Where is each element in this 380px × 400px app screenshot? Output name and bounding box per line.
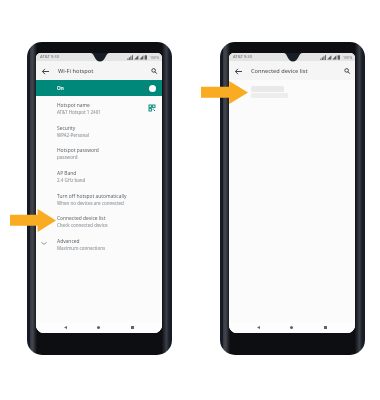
button[interactable]: Advanced <box>36 233 162 255</box>
staticText: When no devices are connected <box>57 200 124 206</box>
button[interactable]: Recent apps <box>127 322 138 333</box>
button[interactable]: Share QR code <box>147 103 157 113</box>
staticText: Check connected device <box>57 222 108 228</box>
staticText: Security <box>57 125 76 132</box>
staticText: password <box>57 154 78 160</box>
button[interactable]: Back <box>60 322 71 333</box>
staticText: Turn off hotspot automatically <box>57 193 127 200</box>
button[interactable]: AP Band <box>36 165 162 187</box>
button[interactable]: Hotspot name <box>36 97 162 119</box>
button[interactable]: Turn off hotspot automatically <box>36 188 162 210</box>
button[interactable]: Search <box>339 63 354 78</box>
button[interactable]: Home <box>286 322 297 333</box>
staticText: On <box>57 85 64 91</box>
staticText: WPA2-Personal <box>57 132 90 138</box>
button[interactable]: Back <box>38 64 52 78</box>
staticText: 2.4 GHz band <box>57 177 86 183</box>
staticText: 100% <box>343 55 353 60</box>
button[interactable]: Connected device list <box>36 210 162 232</box>
staticText: Advanced <box>57 238 80 245</box>
staticText: 100% <box>150 55 160 60</box>
button[interactable]: Home <box>93 322 104 333</box>
staticText: AT&T Hotspot 1 2401 <box>57 109 101 115</box>
button[interactable]: Security <box>36 120 162 142</box>
staticText: AT&T 9:30 <box>233 54 253 60</box>
button[interactable]: Back <box>231 64 245 78</box>
staticText: Hotspot name <box>57 102 90 109</box>
button[interactable]: Back <box>253 322 264 333</box>
button[interactable]: On <box>36 80 162 96</box>
staticText: Connected device list <box>251 67 308 75</box>
staticText: Wi-Fi hotspot <box>58 67 94 75</box>
button[interactable]: Search <box>146 63 161 78</box>
button[interactable]: Hotspot password <box>36 142 162 164</box>
button[interactable]: Recent apps <box>320 322 331 333</box>
staticText: AT&T 9:30 <box>40 54 60 60</box>
staticText: Connected device list <box>57 215 106 222</box>
staticText: Maximum connections <box>57 245 106 251</box>
staticText: Hotspot password <box>57 147 99 154</box>
staticText: AP Band <box>57 170 77 177</box>
